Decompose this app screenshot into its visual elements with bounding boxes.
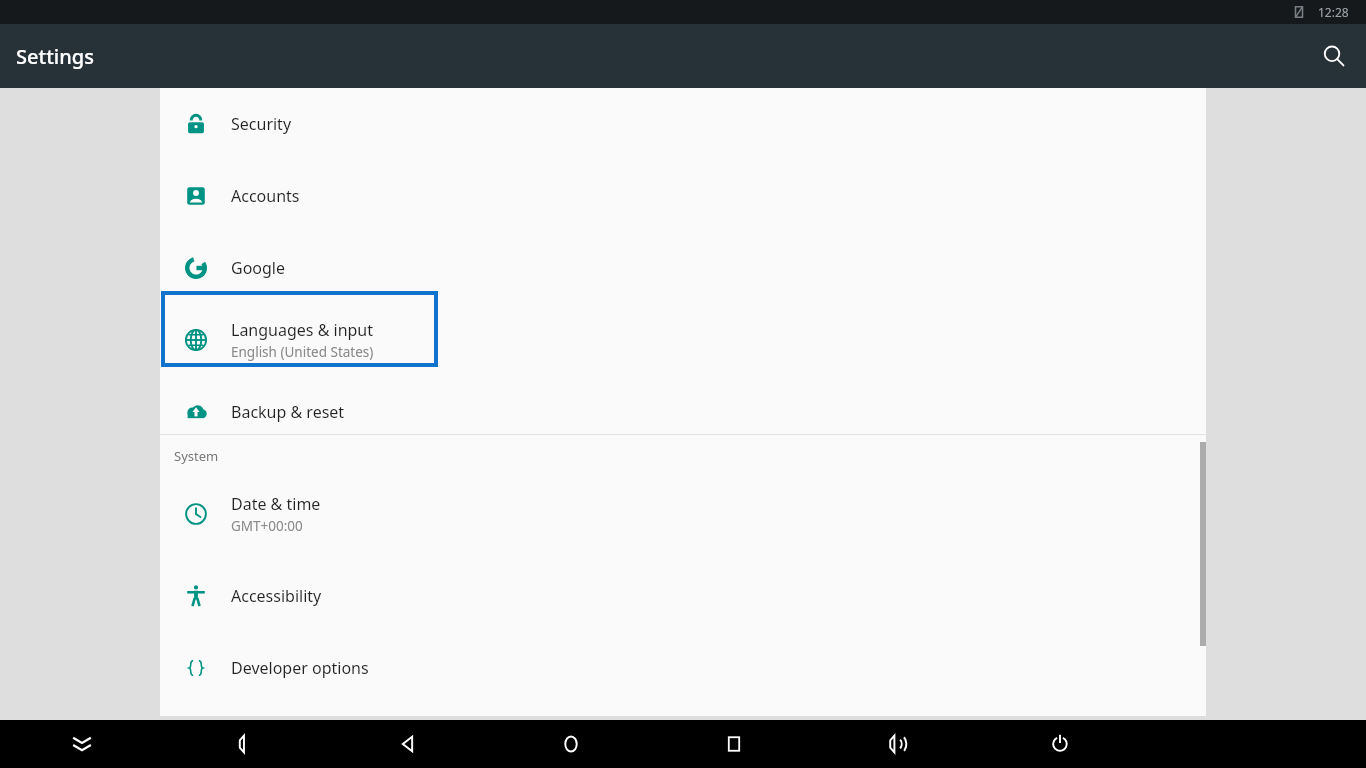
button[interactable]: Developer options <box>160 632 1206 704</box>
staticText: 12:28 <box>1318 4 1349 20</box>
staticText: Developer options <box>231 657 369 679</box>
button[interactable]: Volume up <box>815 720 978 768</box>
button[interactable]: Languages & input <box>160 304 1206 376</box>
button[interactable]: Recents <box>652 720 815 768</box>
button[interactable]: Security <box>160 88 1206 160</box>
button[interactable]: Accessibility <box>160 560 1206 632</box>
button[interactable]: Collapse <box>0 720 163 768</box>
staticText: English (United States) <box>231 343 374 361</box>
staticText: Date & time <box>231 493 321 515</box>
staticText: Languages & input <box>231 319 374 341</box>
button[interactable]: Search <box>1310 32 1358 80</box>
staticText: Accounts <box>231 185 300 207</box>
staticText: Settings <box>16 43 94 70</box>
staticText: GMT+00:00 <box>231 517 303 535</box>
button[interactable]: Home <box>489 720 652 768</box>
button[interactable]: Backup & reset <box>160 376 1206 448</box>
button[interactable]: Power <box>978 720 1141 768</box>
staticText: Accessibility <box>231 585 322 607</box>
staticText: System <box>174 447 219 465</box>
button[interactable]: Volume down <box>163 720 326 768</box>
staticText: Google <box>231 257 286 279</box>
button[interactable]: Accounts <box>160 160 1206 232</box>
button[interactable]: Google <box>160 232 1206 304</box>
staticText: Security <box>231 113 292 135</box>
staticText: Backup & reset <box>231 401 345 423</box>
button[interactable]: Date & time <box>160 478 1206 550</box>
button[interactable]: Back <box>326 720 489 768</box>
